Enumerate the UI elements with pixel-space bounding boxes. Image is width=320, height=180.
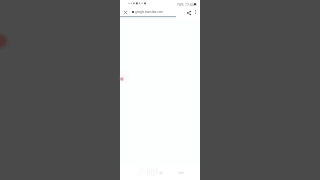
staticText: 17:44: [185, 2, 194, 7]
button[interactable]: Close: [122, 9, 128, 15]
button[interactable]: Toolbar action 1: [153, 169, 162, 178]
staticText: 78%: [177, 2, 184, 7]
button[interactable]: More options: [192, 9, 198, 15]
button[interactable]: Toolbar action 2: [171, 169, 180, 178]
button[interactable]: Share: [185, 9, 192, 16]
staticText: google.translate.com: [135, 10, 163, 14]
